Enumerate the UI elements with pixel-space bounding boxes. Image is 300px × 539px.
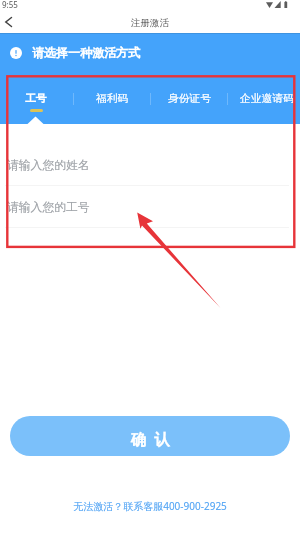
staticText: 请选择一种激活方式 (32, 45, 140, 60)
staticText: 注册激活 (131, 17, 169, 29)
staticText: 请输入您的姓名 (7, 158, 90, 173)
staticText: 9:55 (2, 0, 18, 10)
button[interactable]: 福利码 (74, 88, 151, 124)
button[interactable]: Back (0, 13, 18, 33)
staticText: 身份证号 (168, 92, 212, 106)
button[interactable]: 工号 (0, 88, 74, 124)
staticText: 确 认 (131, 428, 173, 449)
staticText: 企业邀请码 (240, 92, 294, 106)
staticText: 请输入您的工号 (7, 200, 90, 215)
staticText: 福利码 (96, 92, 129, 106)
staticText: 工号 (25, 92, 47, 106)
button[interactable]: 企业邀请码 (228, 88, 300, 124)
button[interactable]: 身份证号 (151, 88, 228, 124)
button[interactable]: 请输入您的工号 (0, 186, 300, 227)
button[interactable]: 请输入您的姓名 (0, 144, 300, 185)
button[interactable]: 无法激活？联系客服400-900-2925 (73, 499, 227, 513)
button[interactable]: 确 认 (10, 416, 290, 456)
